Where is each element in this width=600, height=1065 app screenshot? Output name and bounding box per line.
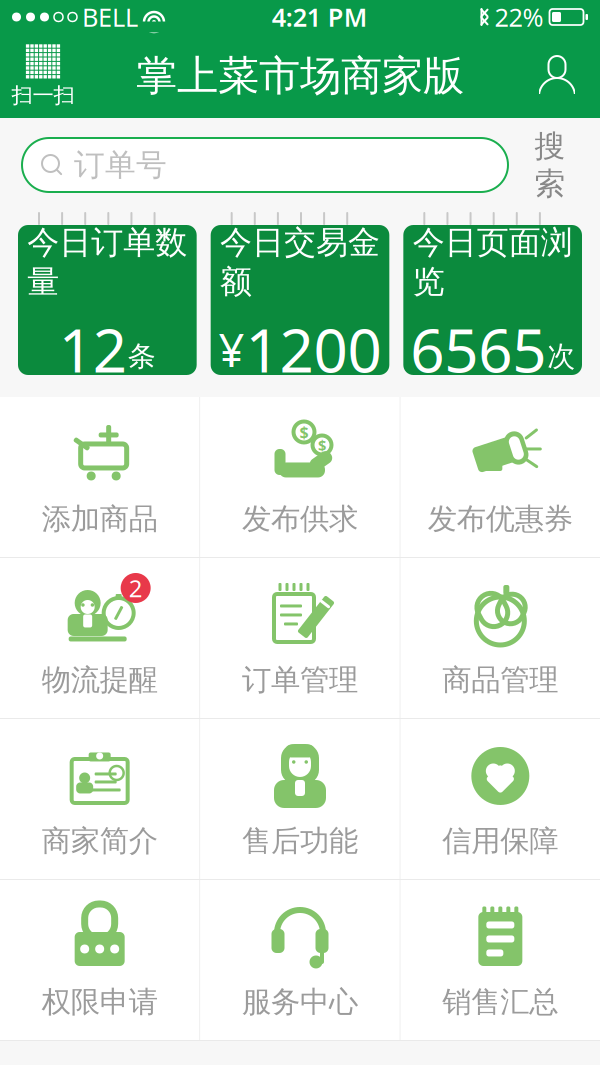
- staticText: BELL: [82, 0, 138, 34]
- staticText: $: [318, 435, 326, 455]
- staticText: 商品管理: [442, 662, 558, 698]
- button[interactable]: 权限申请: [0, 880, 199, 1040]
- staticText: 次: [547, 339, 575, 373]
- button[interactable]: 信用保障: [401, 719, 600, 879]
- staticText: 信用保障: [442, 823, 558, 859]
- staticText: 权限申请: [42, 984, 158, 1020]
- staticText: 今日页面浏览: [413, 223, 573, 301]
- staticText: 服务中心: [242, 984, 358, 1020]
- button[interactable]: 个人中心: [514, 38, 600, 114]
- button[interactable]: 商品管理: [401, 558, 600, 718]
- staticText: ¥: [218, 319, 244, 379]
- staticText: 扫一扫: [11, 82, 74, 109]
- button[interactable]: 订单号: [22, 138, 508, 192]
- staticText: 4:21 PM: [272, 0, 368, 34]
- staticText: 搜索: [534, 127, 565, 203]
- staticText: 物流提醒: [42, 662, 158, 698]
- staticText: 添加商品: [42, 501, 158, 537]
- staticText: 销售汇总: [442, 984, 558, 1020]
- staticText: 掌上菜市场商家版: [136, 51, 464, 101]
- staticText: 发布供求: [242, 501, 358, 537]
- staticText: 商家简介: [42, 823, 158, 859]
- staticText: 今日交易金额: [220, 223, 380, 301]
- button[interactable]: 售后功能: [200, 719, 400, 879]
- button[interactable]: 商家简介: [0, 719, 199, 879]
- button[interactable]: 2: [0, 558, 199, 718]
- button[interactable]: 销售汇总: [401, 880, 600, 1040]
- staticText: 22%: [494, 0, 543, 34]
- button[interactable]: 今日页面浏览: [403, 212, 582, 375]
- button[interactable]: 订单管理: [200, 558, 400, 718]
- staticText: $: [299, 421, 308, 443]
- button[interactable]: 今日交易金额: [211, 212, 389, 375]
- button[interactable]: 发布优惠券: [401, 397, 600, 557]
- button[interactable]: 扫一扫: [0, 38, 86, 114]
- staticText: 今日订单数量: [27, 223, 187, 301]
- staticText: 2: [129, 572, 143, 604]
- button[interactable]: 添加商品: [0, 397, 199, 557]
- staticText: 订单管理: [242, 662, 358, 698]
- staticText: 发布优惠券: [428, 501, 573, 537]
- button[interactable]: 今日订单数量: [18, 212, 197, 375]
- button[interactable]: $: [200, 397, 400, 557]
- staticText: 12: [59, 309, 127, 389]
- button[interactable]: 搜索: [522, 138, 578, 192]
- staticText: 1200: [245, 309, 381, 389]
- staticText: 6565: [410, 309, 546, 389]
- staticText: 订单号: [74, 146, 167, 184]
- staticText: 售后功能: [242, 823, 358, 859]
- staticText: 条: [128, 339, 156, 373]
- button[interactable]: 服务中心: [200, 880, 400, 1040]
